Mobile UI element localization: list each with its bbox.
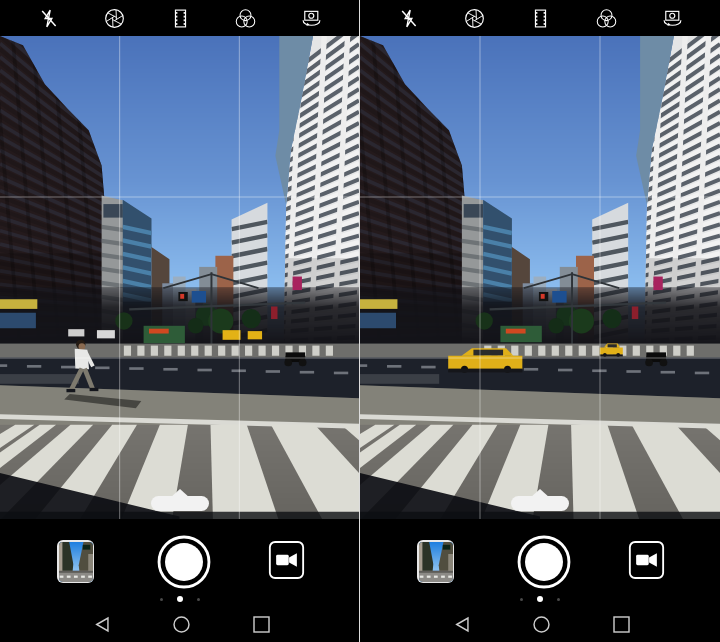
button[interactable]: Back xyxy=(442,604,482,642)
button[interactable]: Film xyxy=(522,0,558,36)
button[interactable]: Flash off xyxy=(390,0,426,36)
button[interactable]: Home xyxy=(521,604,561,642)
button[interactable]: Gallery xyxy=(417,540,454,583)
button[interactable]: Video xyxy=(628,540,665,580)
button[interactable]: Gallery xyxy=(57,540,94,583)
button[interactable]: Color filter xyxy=(588,0,624,36)
button[interactable]: Recents xyxy=(241,604,281,642)
button[interactable]: Home xyxy=(161,604,201,642)
button[interactable]: Aperture xyxy=(96,0,132,36)
button[interactable]: Shutter xyxy=(158,536,210,588)
button[interactable]: Aperture xyxy=(456,0,492,36)
button[interactable]: Shutter xyxy=(518,536,570,588)
button[interactable]: Recents xyxy=(601,604,641,642)
button[interactable]: Switch camera xyxy=(654,0,690,36)
button[interactable]: Switch camera xyxy=(293,0,329,36)
button[interactable]: Video xyxy=(268,540,305,580)
button[interactable]: Modes xyxy=(511,496,569,511)
button[interactable]: Flash off xyxy=(30,0,66,36)
button[interactable]: Modes xyxy=(151,496,209,511)
button[interactable]: Color filter xyxy=(227,0,263,36)
button[interactable]: Back xyxy=(82,604,122,642)
button[interactable]: Film xyxy=(162,0,198,36)
